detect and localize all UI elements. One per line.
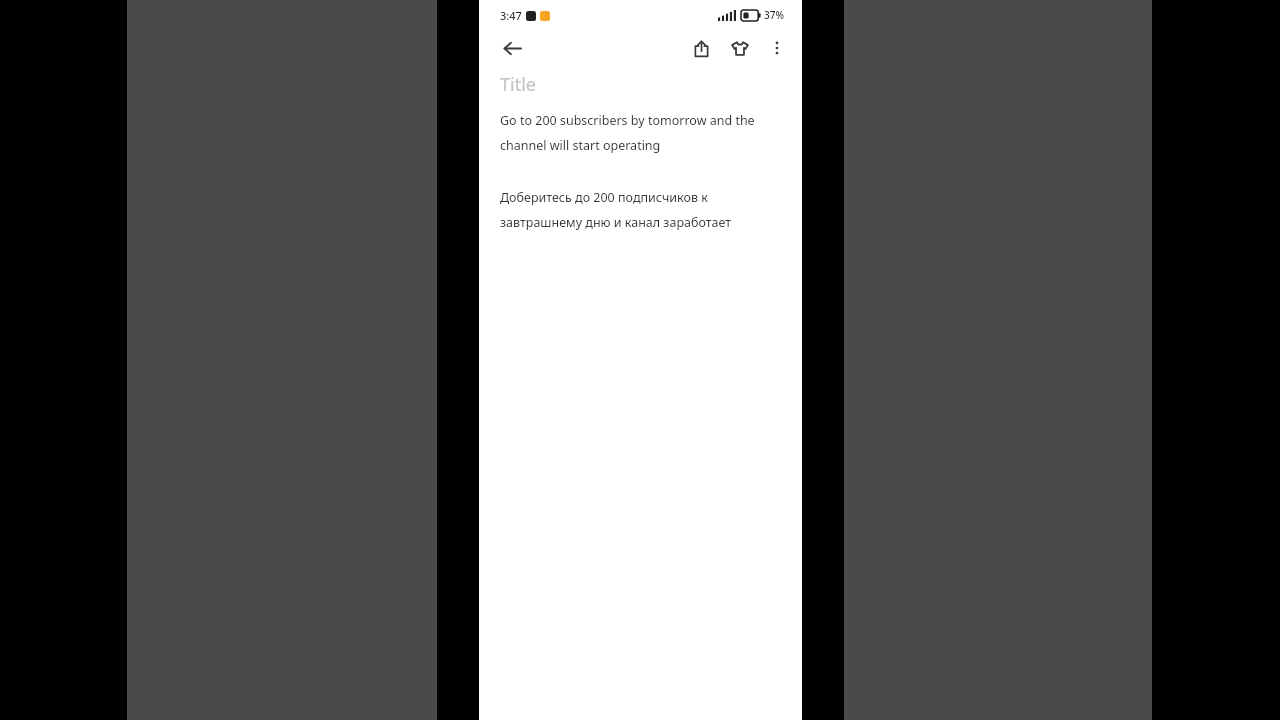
staticText: Title — [500, 72, 536, 97]
staticText: Go to 200 subscribers by tomorrow and th… — [500, 112, 781, 153]
staticText: 3:47 — [500, 8, 522, 23]
button[interactable]: More options — [760, 31, 794, 65]
staticText: 37% — [764, 8, 784, 22]
button[interactable]: Reminder — [723, 31, 757, 65]
button[interactable]: Back — [495, 31, 529, 65]
button[interactable]: Share — [684, 31, 718, 65]
staticText: Доберитесь до 200 подписчиков к завтрашн… — [500, 189, 781, 230]
